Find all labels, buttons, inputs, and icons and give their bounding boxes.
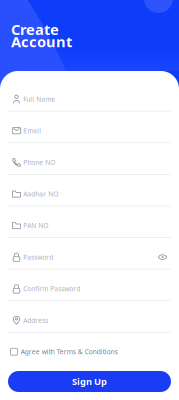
staticText: Confirm Password (23, 284, 80, 293)
staticText: Account (11, 32, 72, 51)
staticText: Agree with Terms & Conditions (21, 347, 118, 356)
button[interactable]: PAN NO (8, 206, 171, 238)
button[interactable]: Phone NO (8, 143, 171, 175)
staticText: Full Name (23, 95, 55, 104)
staticText: Aadhar NO (23, 189, 58, 198)
button[interactable]: Aadhar NO (8, 175, 171, 206)
button[interactable]: Sign Up (8, 371, 171, 392)
staticText: Address (23, 316, 48, 325)
button[interactable]: Password (8, 238, 171, 269)
staticText: PAN NO (23, 221, 48, 230)
staticText: Sign Up (72, 375, 107, 388)
button[interactable]: Email (8, 111, 171, 143)
button[interactable]: Full Name (8, 80, 171, 111)
button[interactable]: Confirm Password (8, 269, 171, 301)
staticText: Create (11, 19, 59, 39)
button[interactable]: Address (8, 301, 171, 333)
staticText: Phone NO (23, 158, 55, 167)
staticText: Password (23, 253, 53, 262)
button[interactable]: Agree with Terms & Conditions (8, 348, 171, 355)
staticText: Email (23, 126, 41, 135)
